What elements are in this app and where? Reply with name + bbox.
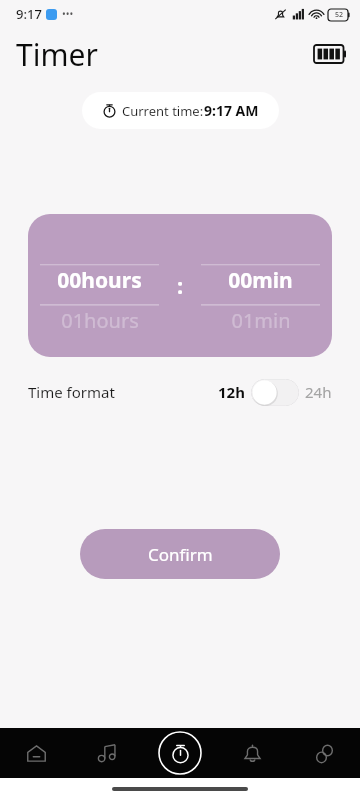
- staticText: 9:17 AM: [204, 101, 259, 120]
- staticText: 9:17: [16, 5, 42, 23]
- staticText: 12h: [218, 382, 245, 402]
- staticText: 52: [335, 10, 344, 20]
- button[interactable]: Timer: [144, 728, 216, 778]
- button[interactable]: Battery: [314, 45, 346, 63]
- staticText: Confirm: [148, 543, 213, 566]
- staticText: 00hours: [57, 266, 142, 295]
- button[interactable]: Toggle time format: [251, 379, 299, 406]
- staticText: 24h: [305, 382, 332, 402]
- button[interactable]: Alarm: [216, 728, 288, 778]
- staticText: Timer: [16, 34, 98, 75]
- staticText: :: [177, 270, 184, 300]
- staticText: Time format: [28, 382, 115, 402]
- staticText: •••: [62, 7, 74, 21]
- button[interactable]: Confirm: [80, 529, 280, 579]
- staticText: 00min: [228, 266, 293, 295]
- button[interactable]: Current time:: [82, 92, 279, 129]
- button[interactable]: Link: [288, 728, 360, 778]
- staticText: 01min: [231, 307, 291, 334]
- button[interactable]: 00hours: [28, 214, 332, 357]
- staticText: Current time:: [122, 102, 204, 120]
- button[interactable]: Music: [72, 728, 144, 778]
- staticText: 01hours: [61, 307, 139, 334]
- button[interactable]: Home: [0, 728, 72, 778]
